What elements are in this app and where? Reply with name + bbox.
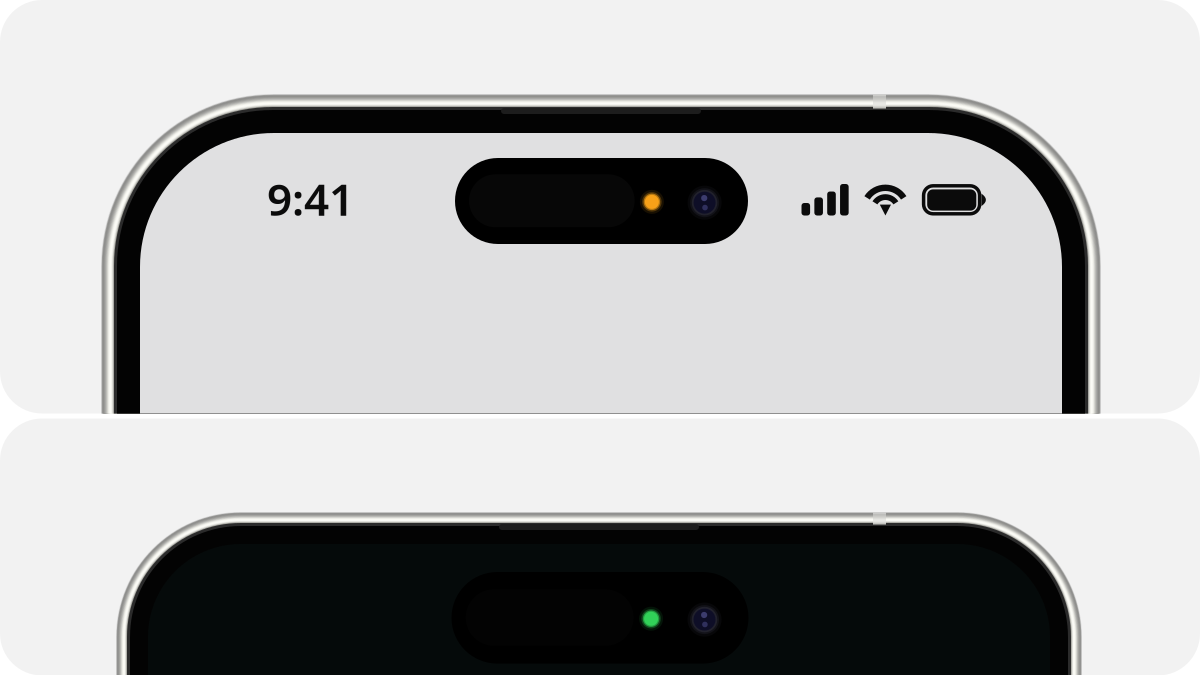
staticText: 9:41 — [267, 169, 354, 228]
